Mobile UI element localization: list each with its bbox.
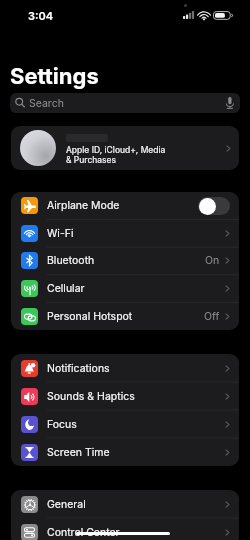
staticText: Settings	[10, 63, 99, 90]
button[interactable]: Sounds & Haptics	[11, 382, 239, 410]
staticText: Screen Time	[47, 446, 110, 459]
staticText: General	[47, 498, 86, 511]
button[interactable]: Wi-Fi	[11, 219, 239, 247]
staticText: Search	[29, 97, 64, 110]
staticText: Sounds & Haptics	[47, 390, 135, 403]
button[interactable]: Airplane Mode toggle	[198, 197, 230, 215]
staticText: Notifications	[47, 362, 110, 375]
button[interactable]: Focus	[11, 410, 239, 438]
button[interactable]: Personal Hotspot	[11, 302, 239, 330]
staticText: Control Center	[47, 526, 120, 539]
staticText: Off	[204, 310, 220, 323]
staticText: Wi-Fi	[47, 227, 74, 240]
staticText: Focus	[47, 418, 77, 431]
staticText: On	[205, 254, 220, 267]
button[interactable]: Notifications	[11, 354, 239, 382]
staticText: Airplane Mode	[47, 199, 120, 212]
staticText: Personal Hotspot	[47, 310, 133, 323]
staticText: Apple ID, iCloud+, Media & Purchases	[66, 145, 166, 165]
button[interactable]: Bluetooth	[11, 247, 239, 274]
staticText: 3:04	[28, 9, 54, 22]
button[interactable]: Search	[10, 93, 240, 113]
button[interactable]: Cellular	[11, 274, 239, 302]
button[interactable]: Control Center	[11, 518, 239, 540]
button[interactable]: Airplane Mode	[11, 192, 239, 219]
button[interactable]: General	[11, 490, 239, 518]
staticText: Bluetooth	[47, 254, 95, 267]
button[interactable]: Apple ID, iCloud+, Media & Purchases	[11, 126, 239, 170]
button[interactable]: Screen Time	[11, 438, 239, 466]
staticText: Cellular	[47, 282, 85, 295]
